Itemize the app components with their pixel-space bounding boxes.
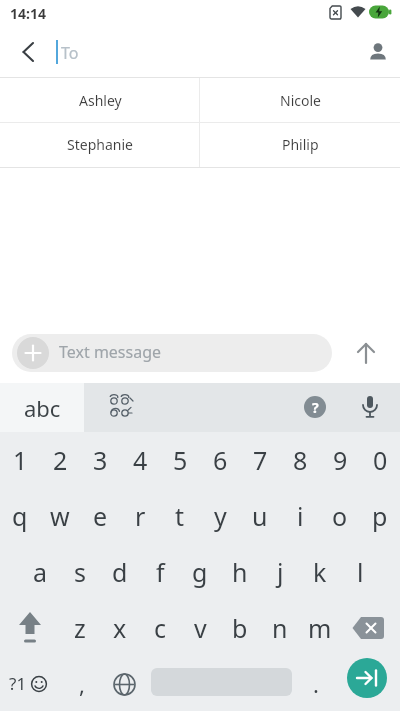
button[interactable]: 5: [160, 433, 200, 486]
button[interactable]: 6: [200, 433, 240, 486]
staticText: To: [61, 42, 79, 64]
staticText: c: [154, 611, 167, 645]
staticText: 14:14: [10, 4, 46, 23]
button[interactable]: a: [20, 545, 60, 598]
staticText: l: [357, 555, 364, 589]
button[interactable]: x: [100, 601, 140, 654]
button[interactable]: 2: [40, 433, 80, 486]
button[interactable]: ?: [304, 396, 326, 418]
button[interactable]: e: [80, 489, 120, 542]
button[interactable]: [12, 334, 332, 372]
staticText: ?1: [9, 672, 27, 695]
staticText: 0: [373, 443, 388, 477]
button[interactable]: [348, 335, 384, 371]
staticText: w: [50, 499, 70, 533]
button[interactable]: r: [120, 489, 160, 542]
staticText: 9: [333, 443, 348, 477]
button[interactable]: t: [160, 489, 200, 542]
staticText: .: [313, 669, 319, 699]
button[interactable]: 3: [80, 433, 120, 486]
button[interactable]: q: [0, 489, 40, 542]
staticText: q: [12, 499, 28, 533]
button[interactable]: ?1: [2, 661, 58, 707]
staticText: 2: [53, 443, 68, 477]
staticText: 3: [93, 443, 108, 477]
button[interactable]: u: [240, 489, 280, 542]
staticText: y: [214, 499, 227, 533]
button[interactable]: h: [220, 545, 260, 598]
staticText: i: [297, 499, 304, 533]
staticText: v: [194, 611, 207, 645]
button[interactable]: j: [260, 545, 300, 598]
button[interactable]: 4: [120, 433, 160, 486]
button[interactable]: d: [100, 545, 140, 598]
staticText: r: [135, 499, 146, 533]
button[interactable]: [347, 658, 387, 698]
button[interactable]: [104, 661, 144, 707]
button[interactable]: 1: [0, 433, 40, 486]
button[interactable]: Ashley: [0, 78, 200, 122]
button[interactable]: z: [60, 601, 100, 654]
staticText: x: [113, 611, 127, 645]
button[interactable]: ,: [66, 661, 98, 707]
staticText: m: [308, 611, 332, 645]
staticText: a: [33, 555, 48, 589]
staticText: Stephanie: [67, 135, 133, 154]
staticText: k: [313, 555, 327, 589]
button[interactable]: 8: [280, 433, 320, 486]
button[interactable]: s: [60, 545, 100, 598]
staticText: s: [74, 555, 86, 589]
staticText: g: [192, 555, 208, 589]
button[interactable]: Philip: [200, 122, 400, 167]
staticText: n: [272, 611, 288, 645]
button[interactable]: l: [340, 545, 380, 598]
button[interactable]: f: [140, 545, 180, 598]
staticText: ?: [312, 398, 319, 417]
button[interactable]: p: [360, 489, 400, 542]
button[interactable]: [346, 605, 390, 651]
button[interactable]: 9: [320, 433, 360, 486]
staticText: 6: [213, 443, 228, 477]
button[interactable]: y: [200, 489, 240, 542]
button[interactable]: w: [40, 489, 80, 542]
staticText: t: [175, 499, 185, 533]
button[interactable]: [8, 605, 52, 651]
button[interactable]: [8, 32, 48, 72]
staticText: abc: [24, 393, 61, 423]
staticText: e: [93, 499, 108, 533]
button[interactable]: o: [320, 489, 360, 542]
button[interactable]: i: [280, 489, 320, 542]
staticText: Text message: [59, 341, 162, 363]
button[interactable]: n: [260, 601, 300, 654]
staticText: Philip: [282, 135, 319, 154]
staticText: 4: [133, 443, 148, 477]
button[interactable]: m: [300, 601, 340, 654]
button[interactable]: 0: [360, 433, 400, 486]
staticText: o: [332, 499, 348, 533]
staticText: u: [252, 499, 268, 533]
staticText: p: [372, 499, 388, 533]
button[interactable]: g: [180, 545, 220, 598]
button[interactable]: c: [140, 601, 180, 654]
button[interactable]: b: [220, 601, 260, 654]
staticText: Nicole: [280, 91, 321, 110]
button[interactable]: [356, 393, 384, 421]
button[interactable]: [0, 383, 84, 432]
button[interactable]: [17, 337, 49, 369]
staticText: 5: [173, 443, 188, 477]
button[interactable]: k: [300, 545, 340, 598]
button[interactable]: v: [180, 601, 220, 654]
button[interactable]: 7: [240, 433, 280, 486]
staticText: 7: [253, 443, 268, 477]
staticText: ,: [79, 669, 85, 699]
button[interactable]: Stephanie: [0, 122, 200, 167]
staticText: 8: [293, 443, 308, 477]
staticText: z: [74, 611, 86, 645]
button[interactable]: [108, 394, 138, 420]
button[interactable]: .: [302, 661, 330, 707]
button[interactable]: [360, 34, 396, 70]
staticText: j: [277, 555, 284, 589]
staticText: 1: [13, 443, 28, 477]
button[interactable]: Nicole: [200, 78, 400, 122]
